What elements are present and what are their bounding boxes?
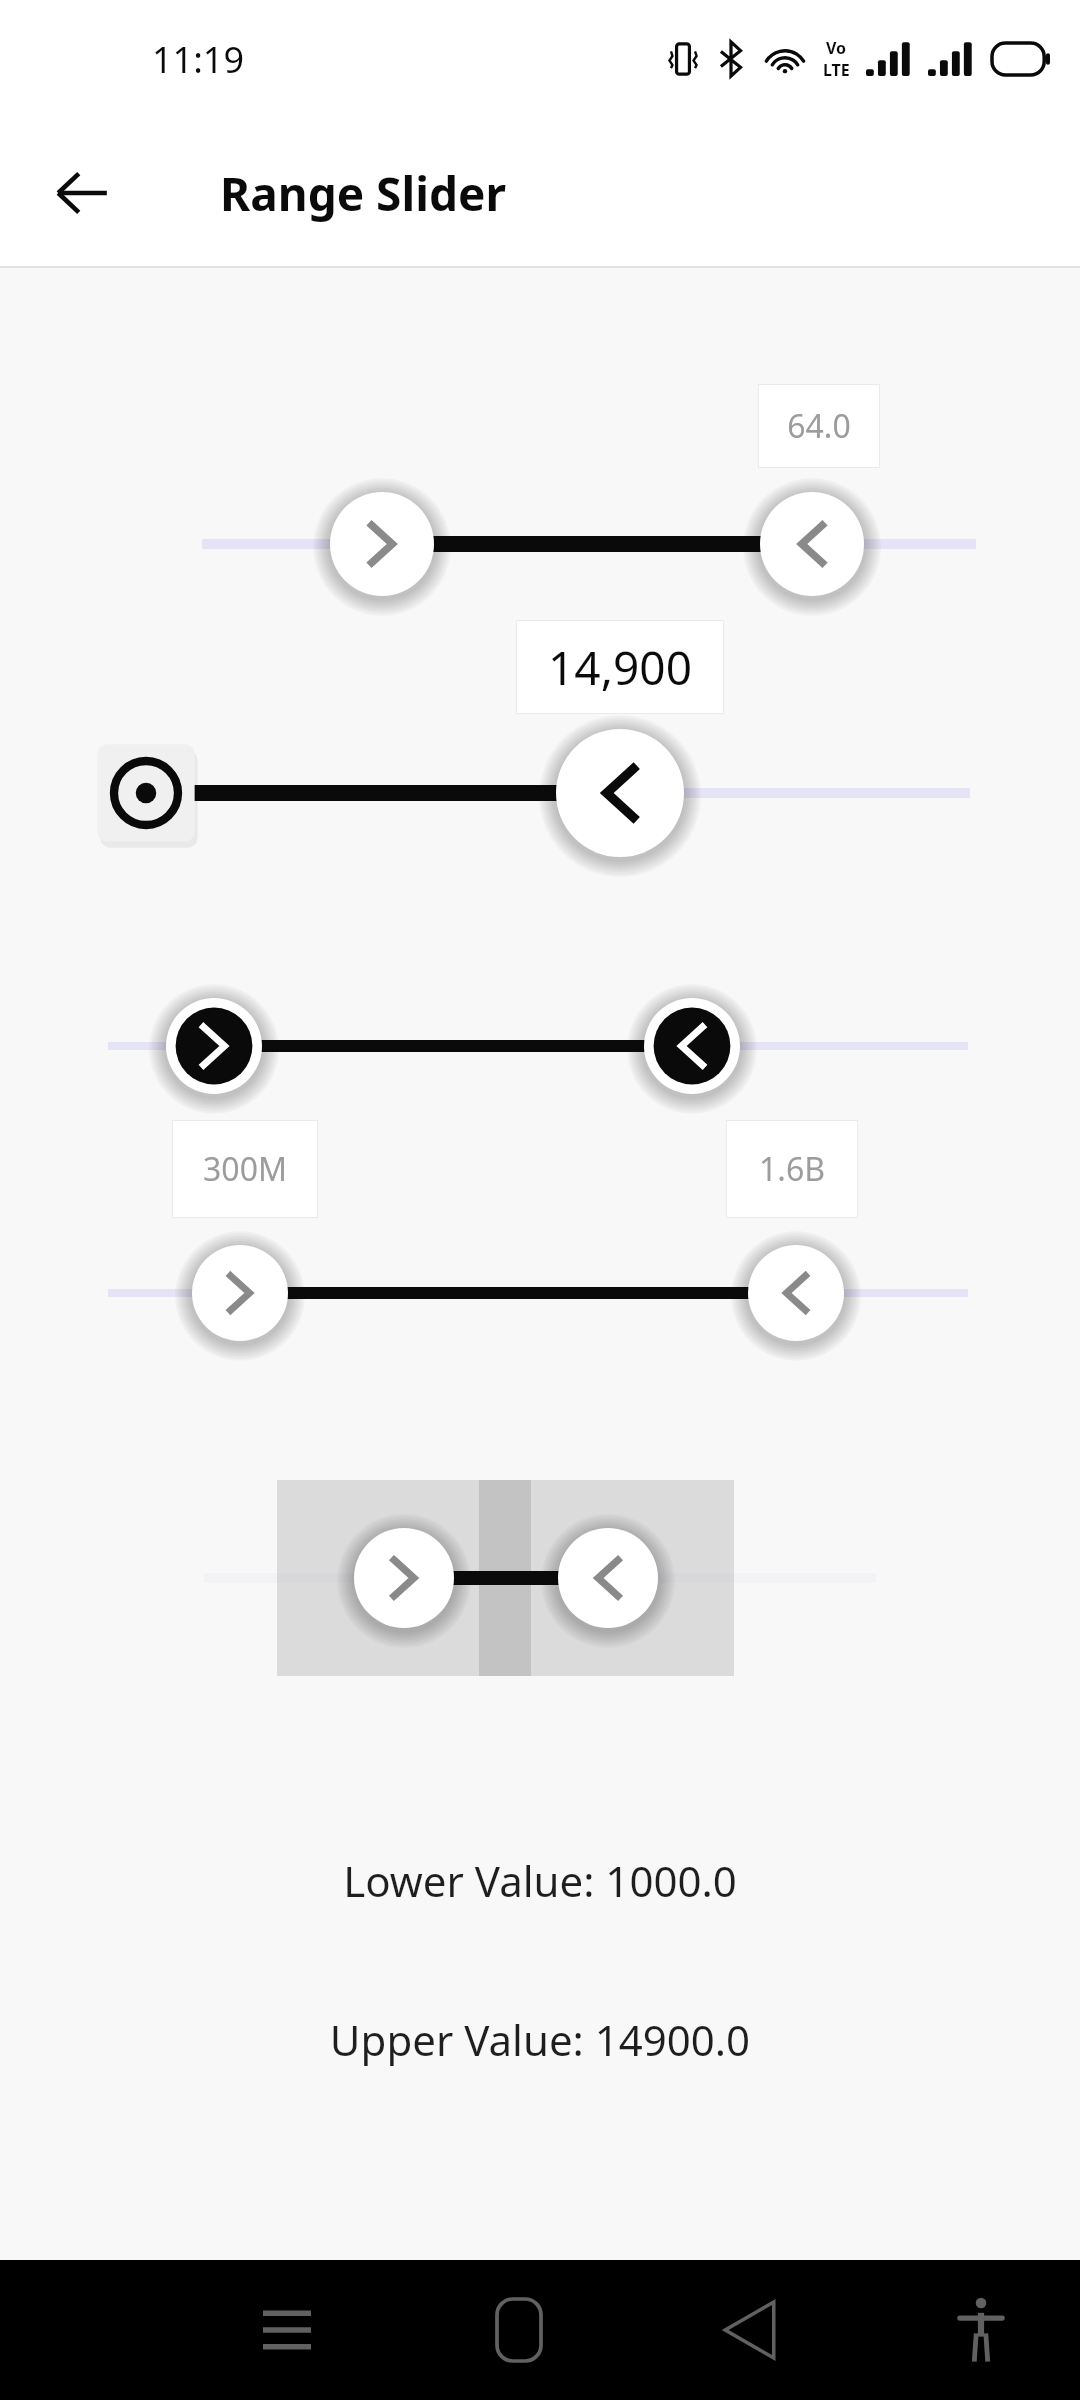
staticText: 14,900 (548, 636, 692, 699)
staticText: 64.0 (787, 404, 851, 448)
staticText: Upper Value: 14900.0 (0, 2011, 1080, 2068)
staticText: LTE (823, 59, 850, 81)
button[interactable]: Range slider (0, 714, 1080, 872)
button[interactable]: Range slider (0, 972, 1080, 1120)
button[interactable]: Boxed range slider (0, 1480, 1080, 1676)
button[interactable]: Range slider (0, 1218, 1080, 1368)
button[interactable]: Back (42, 153, 122, 233)
staticText: 300M (203, 1147, 287, 1191)
button[interactable]: Back (695, 2275, 805, 2385)
staticText: Lower Value: 1000.0 (0, 1852, 1080, 1909)
button[interactable]: Menu (232, 2275, 342, 2385)
staticText: Range Slider (220, 162, 507, 225)
staticText: Vo (826, 37, 847, 59)
staticText: 11:19 (152, 35, 245, 84)
button[interactable]: Home (464, 2275, 574, 2385)
button[interactable]: Range slider (0, 468, 1080, 620)
staticText: 1.6B (759, 1147, 825, 1191)
button[interactable]: Accessibility (926, 2275, 1036, 2385)
